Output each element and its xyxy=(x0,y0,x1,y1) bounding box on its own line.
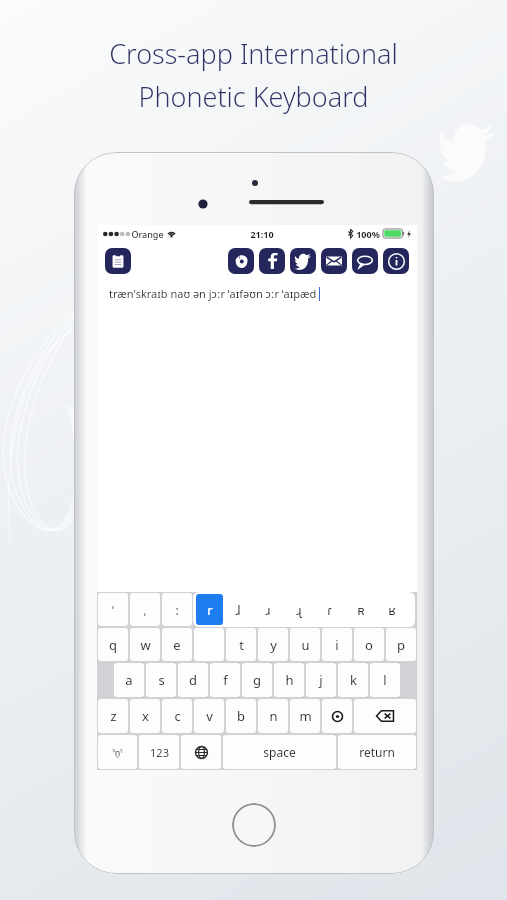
staticText: q xyxy=(109,636,117,654)
button[interactable]: ɺ xyxy=(223,592,253,627)
button[interactable]: b xyxy=(226,699,256,733)
staticText: 100% xyxy=(356,228,380,240)
staticText: a xyxy=(125,671,133,689)
staticText: b xyxy=(237,707,245,725)
staticText: ˈ xyxy=(112,602,114,617)
button[interactable]: a xyxy=(114,663,144,697)
staticText: m xyxy=(299,707,312,725)
staticText: ˀn̥ˤ xyxy=(112,746,123,758)
button[interactable]: z xyxy=(98,699,128,733)
staticText: d xyxy=(189,671,197,689)
button[interactable]: ˀn̥ˤ xyxy=(98,735,137,769)
staticText: s xyxy=(158,671,165,689)
staticText: return xyxy=(359,744,395,760)
staticText: n xyxy=(269,707,278,725)
button[interactable]: k xyxy=(338,663,368,697)
button[interactable]: space xyxy=(223,735,336,769)
button[interactable]: q xyxy=(98,628,128,661)
button[interactable]: 123 xyxy=(139,735,179,769)
staticText: space xyxy=(263,744,296,760)
button[interactable]: Info xyxy=(383,248,409,274)
button[interactable]: Change keyboard xyxy=(181,735,221,769)
button[interactable] xyxy=(194,628,224,661)
button[interactable]: træn'skraɪb naʊ ən jɔːr ˈaɪfəʊn ɔːr ˈaɪp… xyxy=(97,280,417,592)
staticText: t xyxy=(239,636,244,654)
staticText: ɹ xyxy=(265,601,271,619)
button[interactable]: ˌ xyxy=(130,593,160,626)
button[interactable]: Facebook xyxy=(259,248,285,274)
button[interactable]: ʀ xyxy=(345,592,376,627)
staticText: i xyxy=(335,636,339,654)
button[interactable]: return xyxy=(338,735,416,769)
staticText: x xyxy=(142,707,149,725)
staticText: l xyxy=(383,671,387,689)
staticText: w xyxy=(140,636,151,654)
button[interactable]: Evernote xyxy=(228,248,254,274)
button[interactable]: : xyxy=(162,593,192,626)
staticText: ɻ xyxy=(296,601,302,619)
button[interactable]: Twitter xyxy=(290,248,316,274)
button[interactable]: m xyxy=(290,699,320,733)
button[interactable]: ɻ xyxy=(283,592,314,627)
staticText: 123 xyxy=(150,745,169,760)
staticText: f xyxy=(223,671,228,689)
staticText: e xyxy=(173,636,181,654)
button[interactable]: e xyxy=(162,628,192,661)
staticText: ɺ xyxy=(235,601,241,619)
button[interactable]: ʁ xyxy=(376,592,407,627)
button[interactable]: s xyxy=(146,663,176,697)
staticText: k xyxy=(350,671,357,689)
staticText: Phonetic Keyboard xyxy=(0,78,507,115)
staticText: træn'skraɪb naʊ ən jɔːr ˈaɪfəʊn ɔːr ˈaɪp… xyxy=(109,286,317,301)
button[interactable]: Clipboard xyxy=(105,248,131,274)
button[interactable]: Home xyxy=(232,803,276,847)
staticText: ʀ xyxy=(357,601,365,619)
button[interactable]: x xyxy=(130,699,160,733)
staticText: Cross-app International xyxy=(0,35,507,72)
button[interactable]: ˈ xyxy=(98,593,128,626)
button[interactable]: d xyxy=(178,663,208,697)
button[interactable]: j xyxy=(306,663,336,697)
button[interactable]: Delete xyxy=(354,699,416,733)
button[interactable]: h xyxy=(274,663,304,697)
button[interactable]: Mail xyxy=(321,248,347,274)
button[interactable]: Circle xyxy=(322,699,352,733)
button[interactable]: i xyxy=(322,628,352,661)
staticText: g xyxy=(253,671,261,689)
staticText: c xyxy=(174,707,181,725)
button[interactable]: u xyxy=(290,628,320,661)
staticText: 21:10 xyxy=(250,228,274,240)
button[interactable]: w xyxy=(130,628,160,661)
button[interactable]: v xyxy=(194,699,224,733)
staticText: r xyxy=(207,601,213,619)
staticText: ʁ xyxy=(388,601,396,619)
button[interactable]: y xyxy=(258,628,288,661)
button[interactable]: ɾ xyxy=(314,592,345,627)
staticText: j xyxy=(319,671,323,689)
staticText: v xyxy=(206,707,213,725)
button[interactable]: ɹ xyxy=(253,592,283,627)
button[interactable]: r xyxy=(196,594,223,625)
staticText: h xyxy=(285,671,294,689)
staticText: u xyxy=(301,636,310,654)
staticText: p xyxy=(397,636,405,654)
button[interactable]: g xyxy=(242,663,272,697)
staticText: : xyxy=(175,602,179,618)
button[interactable]: n xyxy=(258,699,288,733)
button[interactable]: f xyxy=(210,663,240,697)
staticText: o xyxy=(365,636,373,654)
staticText: Orange xyxy=(131,228,164,240)
button[interactable]: Message xyxy=(352,248,378,274)
button[interactable]: l xyxy=(370,663,400,697)
staticText: ɾ xyxy=(327,601,332,619)
staticText: ˌ xyxy=(144,602,146,617)
staticText: z xyxy=(110,707,117,725)
button[interactable]: o xyxy=(354,628,384,661)
button[interactable]: c xyxy=(162,699,192,733)
button[interactable]: p xyxy=(386,628,416,661)
button[interactable]: t xyxy=(226,628,256,661)
staticText: y xyxy=(270,636,277,654)
